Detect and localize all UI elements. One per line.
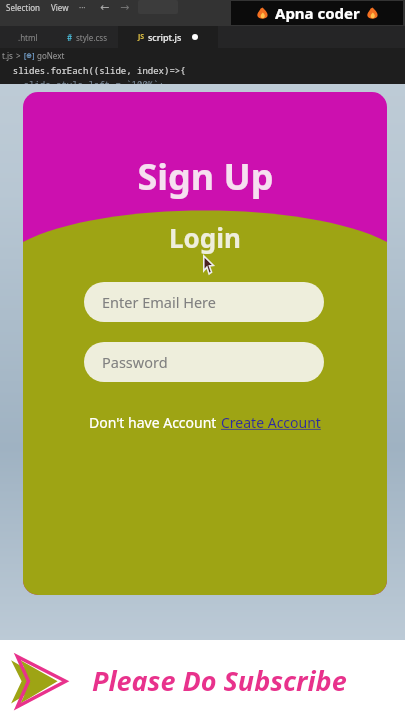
staticText: → <box>120 1 130 14</box>
staticText: script.js <box>148 31 182 43</box>
staticText: t.js <box>2 50 13 61</box>
button[interactable]: Subscribe arrow <box>8 649 70 711</box>
staticText: Apna coder <box>275 3 360 23</box>
button[interactable]: Password <box>84 342 324 382</box>
staticText: ← <box>100 1 110 14</box>
staticText: .html <box>18 32 38 43</box>
staticText: View <box>51 2 69 13</box>
button[interactable]: Create Account <box>221 413 321 432</box>
button[interactable]: Login <box>23 220 387 255</box>
staticText: # <box>67 32 73 43</box>
staticText: [⊕] <box>24 51 35 61</box>
staticText: Password <box>102 352 168 372</box>
staticText: Enter Email Here <box>102 292 216 312</box>
button[interactable]: Enter Email Here <box>84 282 324 322</box>
staticText: slide.style.left = `100%`; <box>2 78 165 84</box>
staticText: Please Do Subscribe <box>92 662 347 699</box>
staticText: Login <box>169 220 241 255</box>
button[interactable]: Sign Up <box>23 152 387 201</box>
staticText: goNext <box>37 50 65 61</box>
staticText: Selection <box>6 2 41 13</box>
staticText: JS <box>138 32 145 42</box>
staticText: slides.forEach((slide, index)=>{ <box>2 64 186 76</box>
staticText: Create Account <box>221 413 321 432</box>
staticText: > <box>16 50 21 61</box>
staticText: Sign Up <box>137 152 274 201</box>
staticText: style.css <box>76 32 108 43</box>
staticText: Don't have Account <box>89 413 221 432</box>
staticText: ··· <box>79 2 86 13</box>
